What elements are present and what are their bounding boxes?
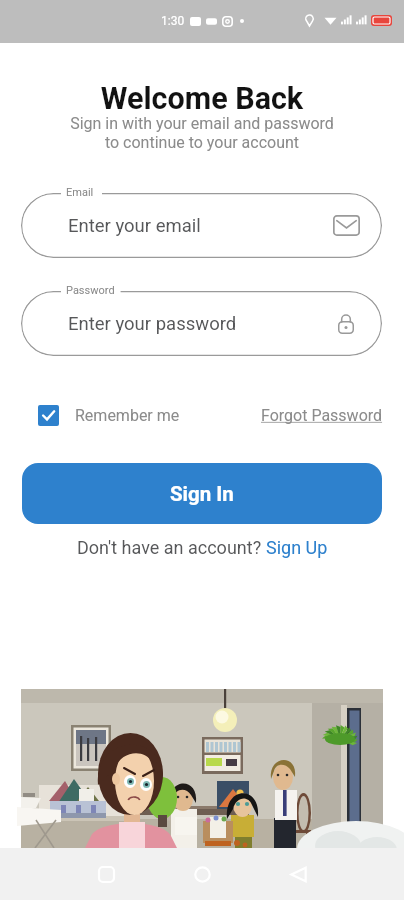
button[interactable]: Forgot Password	[261, 406, 383, 425]
staticText: Don't have an account?	[77, 537, 266, 558]
staticText: Enter your password	[68, 313, 237, 335]
staticText: Sign In	[170, 482, 234, 506]
button[interactable]: Enter your password	[21, 291, 382, 356]
staticText: Enter your email	[68, 215, 201, 237]
button[interactable]: Sign Up	[266, 537, 328, 558]
button[interactable]: Remember me	[38, 405, 180, 426]
button[interactable]: Enter your email	[21, 193, 382, 258]
button[interactable]: Sign In	[22, 463, 382, 524]
staticText: Email	[66, 186, 94, 199]
staticText: Welcome Back	[0, 81, 404, 117]
staticText: Remember me	[75, 406, 180, 425]
staticText: Sign in with your email and password to …	[0, 114, 404, 152]
staticText: 1:30	[161, 14, 185, 28]
staticText: Password	[66, 284, 115, 297]
